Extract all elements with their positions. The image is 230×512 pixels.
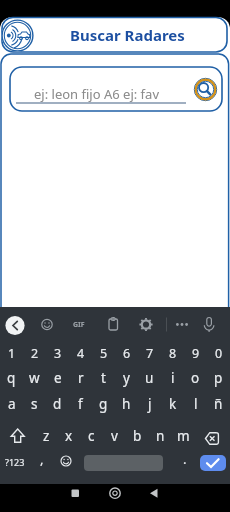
button[interactable]	[76, 484, 153, 512]
staticText: i	[171, 369, 175, 387]
staticText: q	[7, 369, 16, 387]
staticText: a	[8, 395, 16, 413]
staticText: 5	[100, 345, 108, 362]
button[interactable]: y	[115, 366, 138, 390]
button[interactable]: c	[80, 424, 103, 448]
button[interactable]: q	[0, 366, 23, 390]
button[interactable]: v	[103, 424, 126, 448]
button[interactable]	[195, 424, 230, 448]
button[interactable]: i	[161, 366, 184, 390]
button[interactable]	[0, 424, 35, 448]
button[interactable]: 3	[46, 341, 69, 365]
staticText: t	[101, 369, 106, 387]
button[interactable]: g	[92, 392, 115, 416]
staticText: m	[177, 427, 190, 445]
staticText: p	[214, 369, 223, 387]
staticText: k	[169, 395, 177, 413]
staticText: y	[123, 369, 130, 387]
button[interactable]: m	[172, 424, 195, 448]
staticText: ,	[40, 450, 44, 468]
staticText: x	[65, 427, 73, 445]
staticText: h	[122, 395, 131, 413]
button[interactable]: 2	[23, 341, 46, 365]
button[interactable]: 9	[184, 341, 207, 365]
button[interactable]: 0	[207, 341, 230, 365]
staticText: 3	[54, 345, 62, 362]
staticText: ?123	[5, 456, 25, 468]
staticText: 7	[146, 345, 154, 362]
button[interactable]	[200, 455, 226, 471]
button[interactable]: GIF	[67, 317, 91, 332]
button[interactable]: ?123	[0, 451, 31, 473]
staticText: r	[78, 369, 84, 387]
button[interactable]: u	[138, 366, 161, 390]
button[interactable]: p	[207, 366, 230, 390]
staticText: f	[78, 395, 83, 413]
staticText: d	[53, 395, 62, 413]
button[interactable]: j	[138, 392, 161, 416]
staticText: z	[43, 427, 50, 445]
staticText: 9	[192, 345, 200, 362]
staticText: s	[31, 395, 38, 413]
staticText: g	[99, 395, 108, 413]
button[interactable]: s	[23, 392, 46, 416]
staticText: 2	[31, 345, 39, 362]
staticText: 1	[8, 345, 16, 362]
staticText: o	[191, 369, 200, 387]
staticText: Buscar Radares	[70, 25, 185, 45]
staticText: w	[29, 369, 40, 387]
button[interactable]: .	[169, 448, 201, 470]
staticText: 8	[169, 345, 177, 362]
staticText: .	[183, 450, 187, 468]
button[interactable]: 1	[0, 341, 23, 365]
button[interactable]: d	[46, 392, 69, 416]
button[interactable]: z	[35, 424, 57, 448]
button[interactable]: b	[126, 424, 149, 448]
button[interactable]: 5	[92, 341, 115, 365]
staticText: 4	[77, 345, 85, 362]
staticText: GIF	[73, 320, 85, 330]
button[interactable]: k	[161, 392, 184, 416]
button[interactable]: 6	[115, 341, 138, 365]
button[interactable]: Buscar Radares	[12, 17, 230, 52]
button[interactable]: ,	[26, 448, 58, 470]
staticText: c	[88, 427, 95, 445]
button[interactable]	[0, 484, 76, 512]
button[interactable]: o	[184, 366, 207, 390]
button[interactable]: 4	[69, 341, 92, 365]
staticText: j	[148, 395, 152, 413]
button[interactable]: ej: leon fijo A6 ej: fav	[9, 80, 183, 107]
staticText: 0	[215, 345, 223, 362]
staticText: e	[54, 369, 62, 387]
button[interactable]: x	[57, 424, 80, 448]
button[interactable]: w	[23, 366, 46, 390]
staticText: b	[133, 427, 142, 445]
button[interactable]: t	[92, 366, 115, 390]
button[interactable]: ñ	[207, 392, 230, 416]
staticText: ñ	[214, 395, 223, 413]
button[interactable]	[84, 455, 163, 471]
button[interactable]	[153, 484, 230, 512]
button[interactable]: e	[46, 366, 69, 390]
staticText: ej: leon fijo A6 ej: fav	[34, 85, 159, 103]
button[interactable]: f	[69, 392, 92, 416]
staticText: u	[145, 369, 154, 387]
button[interactable]: l	[184, 392, 207, 416]
button[interactable]: 8	[161, 341, 184, 365]
staticText: 6	[123, 345, 131, 362]
button[interactable]: r	[69, 366, 92, 390]
button[interactable]: a	[0, 392, 23, 416]
button[interactable]: n	[149, 424, 172, 448]
staticText: n	[156, 427, 165, 445]
button[interactable]: h	[115, 392, 138, 416]
button[interactable]: 7	[138, 341, 161, 365]
staticText: v	[111, 427, 118, 445]
staticText: l	[194, 395, 198, 413]
